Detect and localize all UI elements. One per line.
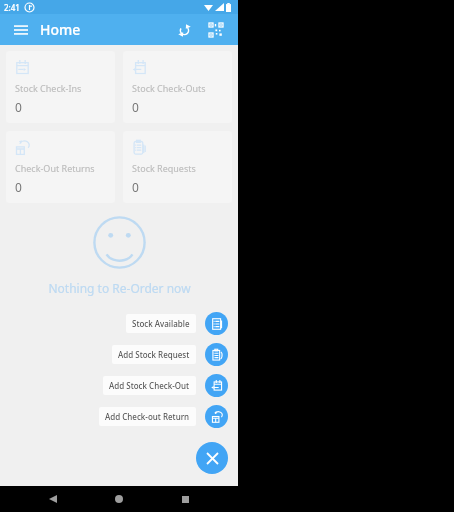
button[interactable]: Add Check-out Return: [99, 407, 196, 426]
staticText: 0: [15, 179, 22, 195]
button[interactable]: Add Check-out Return: [205, 405, 228, 428]
staticText: Add Stock Request: [118, 349, 190, 360]
staticText: 0: [15, 99, 22, 115]
button[interactable]: Stock Check-Outs: [123, 51, 232, 123]
button[interactable]: Stock Check-Ins: [6, 51, 115, 123]
button[interactable]: Stock Requests: [123, 131, 232, 203]
button[interactable]: Add Stock Check-Out: [103, 376, 196, 395]
button[interactable]: Add Stock Request: [112, 345, 196, 364]
button[interactable]: Home: [106, 486, 132, 512]
button[interactable]: Add Stock Check-Out: [205, 374, 228, 397]
staticText: Add Check-out Return: [105, 411, 190, 422]
staticText: Stock Available: [132, 318, 190, 329]
button[interactable]: Stock Available: [205, 312, 228, 335]
button[interactable]: Open navigation menu: [10, 19, 32, 41]
button[interactable]: Back: [40, 486, 66, 512]
staticText: Add Stock Check-Out: [109, 380, 190, 391]
staticText: 0: [132, 179, 139, 195]
button[interactable]: Close menu: [196, 442, 228, 474]
button[interactable]: Scan barcode: [204, 18, 228, 42]
button[interactable]: Check-Out Returns: [6, 131, 115, 203]
staticText: Stock Check-Ins: [15, 82, 82, 94]
button[interactable]: Sync: [172, 18, 196, 42]
button[interactable]: Stock Available: [126, 314, 196, 333]
staticText: Stock Requests: [132, 162, 196, 174]
staticText: Check-Out Returns: [15, 162, 95, 174]
staticText: Stock Check-Outs: [132, 82, 206, 94]
button[interactable]: Recent apps: [172, 486, 198, 512]
staticText: 2:41: [4, 2, 20, 13]
staticText: Home: [40, 20, 81, 39]
button[interactable]: Add Stock Request: [205, 343, 228, 366]
staticText: Nothing to Re-Order now: [48, 280, 191, 296]
staticText: 0: [132, 99, 139, 115]
